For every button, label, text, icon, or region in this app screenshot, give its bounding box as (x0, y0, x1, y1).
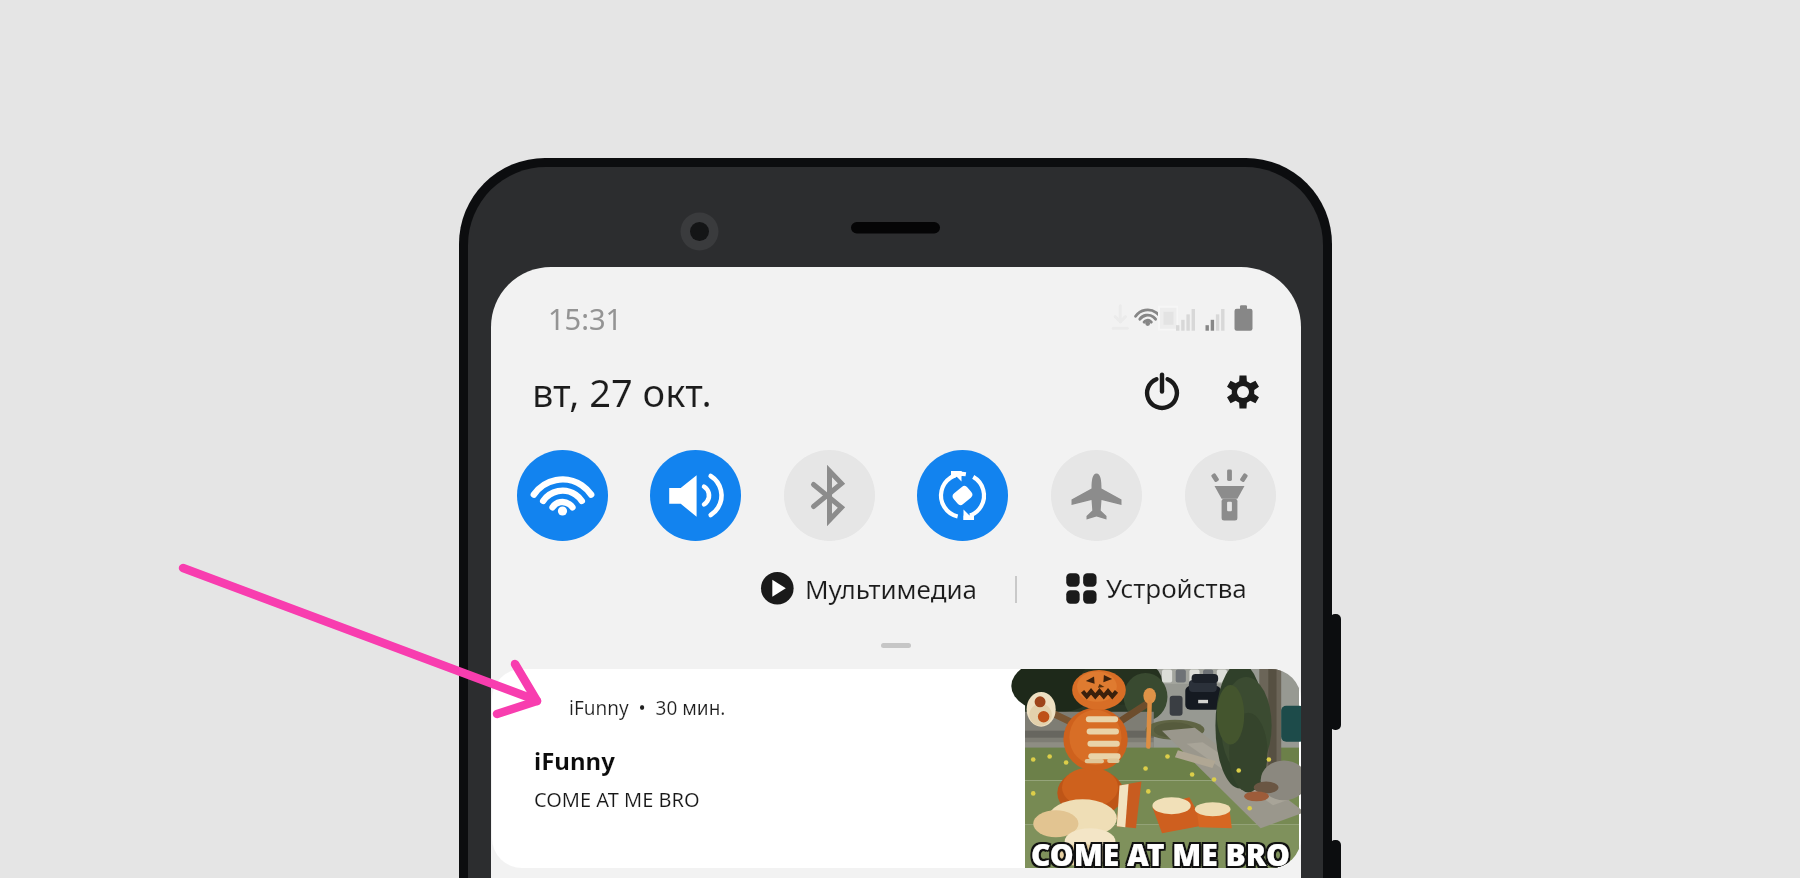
button[interactable]: Power (1137, 368, 1187, 418)
staticText: COME AT ME BRO (1029, 834, 1288, 868)
staticText: Мультимедиа (805, 571, 978, 605)
staticText: COME AT ME BRO (1033, 832, 1292, 868)
staticText: 15:31 (548, 299, 623, 338)
button[interactable]: Bluetooth (784, 450, 875, 541)
staticText: COME AT ME BRO (1033, 834, 1292, 868)
staticText: COME AT ME BRO (1031, 836, 1290, 868)
button[interactable]: Auto rotate (917, 450, 1008, 541)
staticText: iFunny (534, 744, 615, 777)
staticText: COME AT ME BRO (1029, 832, 1288, 868)
button[interactable]: Settings (1218, 367, 1268, 417)
button[interactable]: Мультимедиа (761, 572, 976, 606)
staticText: COME AT ME BRO (1031, 832, 1290, 868)
staticText: COME AT ME BRO (534, 786, 700, 813)
staticText: Устройства (1106, 570, 1247, 604)
button[interactable]: Sound (650, 450, 741, 541)
button[interactable]: Wi-Fi (517, 450, 608, 541)
staticText: вт, 27 окт. (532, 366, 712, 418)
button[interactable]: Airplane mode (1051, 450, 1142, 541)
staticText: COME AT ME BRO (1031, 834, 1290, 868)
staticText: COME AT ME BRO (1029, 836, 1288, 868)
button[interactable]: iFunny • 30 мин. (492, 669, 1301, 868)
button[interactable]: Устройства (1064, 572, 1254, 606)
staticText: COME AT ME BRO (1033, 836, 1292, 868)
staticText: iFunny • 30 мин. (569, 695, 726, 721)
button[interactable]: Flashlight (1185, 450, 1276, 541)
